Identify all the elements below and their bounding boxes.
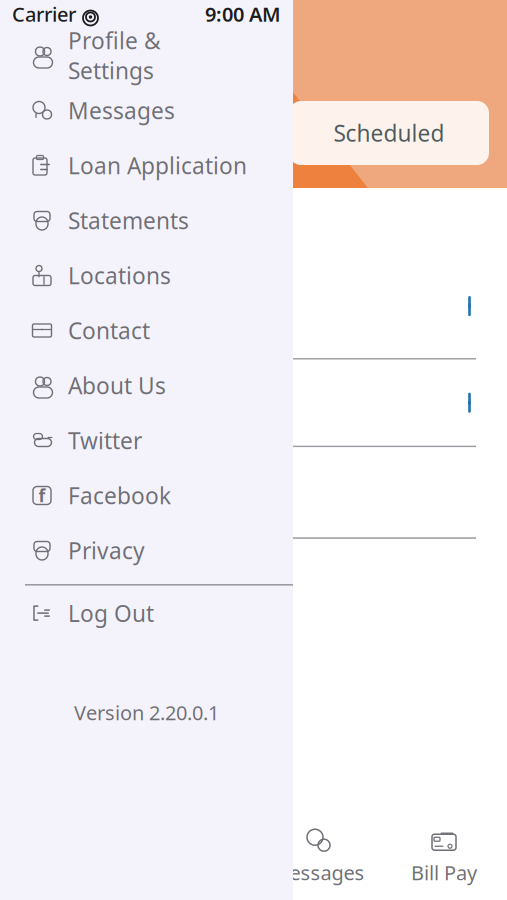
button[interactable]: Account row: [9, 360, 498, 446]
button[interactable]: Account row: [9, 447, 498, 537]
staticText: Profile & Settings: [68, 25, 161, 86]
staticText: Loan Application: [68, 150, 247, 180]
staticText: About Us: [68, 370, 166, 400]
staticText: Privacy: [68, 535, 145, 565]
staticText: 9:00 AM: [205, 1, 281, 27]
button[interactable]: Loan Application: [0, 138, 293, 193]
staticText: Bill Pay: [411, 859, 477, 886]
staticText: f: [38, 484, 45, 507]
button[interactable]: Statements: [0, 193, 293, 248]
staticText: Statements: [68, 205, 189, 235]
button[interactable]: Messages: [255, 820, 381, 894]
button[interactable]: Profile & Settings: [0, 28, 293, 83]
button[interactable]: Scheduled: [289, 101, 489, 165]
staticText: Version 2.20.0.1: [74, 699, 219, 726]
button[interactable]: Account row: [9, 254, 498, 358]
button[interactable]: Contact: [0, 303, 293, 358]
staticText: Contact: [68, 315, 150, 345]
staticText: Facebook: [68, 480, 171, 510]
staticText: Locations: [68, 260, 171, 290]
staticText: Twitter: [68, 425, 142, 455]
button[interactable]: Log Out: [0, 586, 293, 641]
button[interactable]: Bill Pay: [381, 820, 507, 894]
button[interactable]: About Us: [0, 358, 293, 413]
staticText: Messages: [68, 95, 175, 125]
button[interactable]: Twitter: [0, 413, 293, 468]
button[interactable]: Account row: [9, 539, 498, 659]
staticText: Scheduled: [333, 118, 444, 148]
button[interactable]: f: [0, 468, 293, 523]
button[interactable]: Messages: [0, 83, 293, 138]
staticText: Messages: [271, 859, 364, 886]
staticText: Carrier: [12, 1, 76, 27]
staticText: Log Out: [68, 598, 154, 628]
button[interactable]: Privacy: [0, 523, 293, 578]
button[interactable]: Locations: [0, 248, 293, 303]
